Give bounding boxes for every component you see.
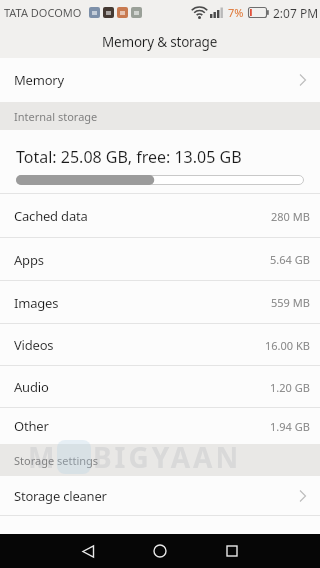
staticText: 2:07 PM bbox=[273, 5, 319, 21]
staticText: M bbox=[28, 438, 55, 476]
staticText: Apps bbox=[14, 251, 44, 269]
staticText: TATA DOCOMO bbox=[4, 5, 82, 20]
staticText: 5.64 GB bbox=[270, 252, 310, 267]
staticText: 1.20 GB bbox=[270, 380, 310, 395]
button[interactable]: Videos bbox=[0, 324, 320, 366]
button[interactable] bbox=[52, 534, 124, 568]
button[interactable]: Images bbox=[0, 281, 320, 324]
staticText: 559 MB bbox=[271, 295, 310, 310]
staticText: Audio bbox=[14, 378, 49, 396]
staticText: 280 MB bbox=[271, 209, 310, 224]
staticText: BIGYAAN bbox=[93, 438, 242, 476]
staticText: Memory & storage bbox=[102, 33, 218, 51]
button[interactable]: Cached data bbox=[0, 194, 320, 238]
staticText: Cached data bbox=[14, 207, 88, 225]
staticText: Total: 25.08 GB, free: 13.05 GB bbox=[16, 146, 242, 168]
button[interactable]: Other bbox=[0, 408, 320, 444]
button[interactable] bbox=[124, 534, 196, 568]
staticText: 16.00 KB bbox=[265, 338, 310, 353]
staticText: Internal storage bbox=[14, 109, 98, 124]
staticText: 7% bbox=[228, 5, 244, 20]
button[interactable]: Memory bbox=[0, 58, 320, 102]
staticText: 1.94 GB bbox=[270, 419, 310, 434]
staticText: Storage settings bbox=[14, 453, 99, 468]
staticText: Other bbox=[14, 417, 49, 435]
staticText: Storage cleaner bbox=[14, 487, 107, 505]
button[interactable] bbox=[196, 534, 268, 568]
staticText: Memory bbox=[14, 71, 64, 89]
staticText: Images bbox=[14, 294, 59, 312]
button[interactable]: Apps bbox=[0, 238, 320, 281]
button[interactable]: Audio bbox=[0, 366, 320, 408]
button[interactable]: Storage cleaner bbox=[0, 476, 320, 516]
staticText: Videos bbox=[14, 336, 54, 354]
